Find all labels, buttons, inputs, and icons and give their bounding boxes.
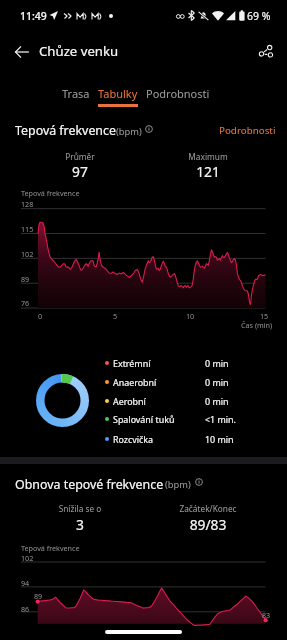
staticText: Aerobní [113,395,146,407]
staticText: Spalování tuků [113,413,175,425]
staticText: Obnova tepové frekvence [15,476,164,493]
staticText: Chůze venku [39,42,119,60]
button[interactable]: Rozcvička [0,430,287,447]
staticText: 11:49 [20,9,47,23]
staticText: Tabulky [98,86,138,101]
staticText: 5 [55,311,175,321]
staticText: (bpm) [165,478,191,491]
button[interactable]: Trasa [62,86,90,107]
staticText: 94 [21,578,30,588]
staticText: 115 [21,224,34,234]
staticText: Tepová frekvence [15,122,116,139]
staticText: Trasa [62,86,90,101]
staticText: 97 [20,162,140,181]
staticText: 89/83 [148,515,268,534]
button[interactable]: Aerobní [0,392,287,409]
staticText: 69 % [247,9,271,23]
staticText: 76 [21,298,30,308]
staticText: (bpm) [116,125,142,138]
staticText: 83 [262,610,271,620]
button[interactable]: Extrémní [0,354,287,371]
staticText: 0 min [205,395,229,407]
staticText: Průměr [20,151,140,162]
staticText: Začátek/Konec [148,503,268,514]
button[interactable]: Spalování tuků [0,410,287,427]
staticText: 89 [34,591,43,601]
staticText: Snížila se o [20,503,140,514]
staticText: 10 min [205,433,234,445]
staticText: Tepová frekvence [21,543,80,553]
staticText: 0 min [205,376,229,388]
button[interactable]: Podrobnosti [217,122,278,139]
staticText: Maximum [148,151,268,162]
staticText: Podrobnosti [146,86,210,101]
staticText: Rozcvička [113,433,154,445]
button[interactable]: Anaerobní [0,373,287,390]
staticText: 0 min [205,357,229,369]
staticText: 89 [21,274,30,284]
staticText: Extrémní [113,357,151,369]
staticText: 15 [204,311,287,321]
button[interactable]: Tabulky [98,86,138,107]
staticText: 128 [21,199,34,209]
button[interactable]: Back [5,35,39,69]
staticText: Podrobnosti [219,124,276,137]
staticText: Tepová frekvence [21,188,80,198]
button[interactable]: Share [250,36,282,68]
staticText: 102 [21,553,34,563]
staticText: 121 [148,162,268,181]
staticText: 102 [21,249,34,259]
staticText: 0 [0,311,100,321]
staticText: Anaerobní [113,376,157,388]
button[interactable]: Podrobnosti [146,86,210,107]
staticText: 86 [21,604,30,614]
staticText: <1 min. [205,413,236,425]
staticText: 10 [130,311,250,321]
staticText: 3 [20,515,140,534]
staticText: Čas (min) [241,320,273,330]
